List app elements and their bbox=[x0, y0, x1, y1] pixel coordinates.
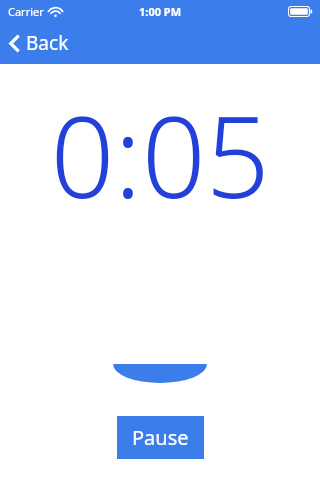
staticText: Carrier bbox=[8, 4, 44, 19]
staticText: 0:05 bbox=[0, 78, 320, 231]
staticText: Pause bbox=[132, 424, 189, 451]
other: Back bbox=[9, 34, 20, 53]
button[interactable]: Pause bbox=[117, 416, 204, 459]
button[interactable]: Back bbox=[0, 26, 83, 60]
staticText: 1:00 PM bbox=[139, 4, 182, 19]
staticText: Back bbox=[26, 30, 69, 56]
